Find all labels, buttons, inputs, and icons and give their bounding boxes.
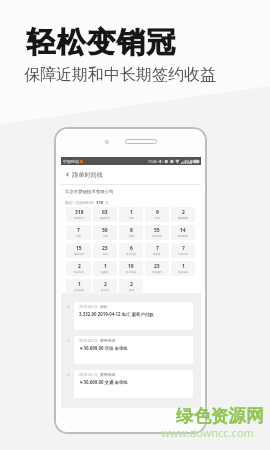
staticText: 50 xyxy=(102,227,108,234)
staticText: 回款 xyxy=(100,304,108,309)
staticText: 退换货 xyxy=(101,271,109,274)
staticText: 商机跟进 xyxy=(178,235,188,238)
staticText: 318 xyxy=(96,200,104,206)
staticText: 2019-04-12 xyxy=(79,372,98,377)
button[interactable]: 2019-04-12 xyxy=(74,370,193,398)
staticText: 7 xyxy=(77,227,80,234)
staticText: 拜访记录 xyxy=(152,235,162,238)
button[interactable]: Back xyxy=(61,165,201,184)
button[interactable]: 19 xyxy=(119,261,143,276)
staticText: 2 xyxy=(104,281,107,288)
button[interactable]: 1 xyxy=(93,261,117,276)
staticText: 售后工单 xyxy=(74,271,84,274)
staticText: 新增客户 xyxy=(74,217,84,220)
button[interactable]: 318 xyxy=(66,207,91,222)
button[interactable]: 2 xyxy=(93,279,117,294)
staticText: 1 xyxy=(182,263,185,270)
other: Back xyxy=(65,172,70,177)
staticText: 20:10:32 xyxy=(185,159,199,164)
staticText: 绿色资源网 xyxy=(176,405,264,427)
button[interactable]: 2 xyxy=(66,261,91,276)
staticText: 报价单 xyxy=(153,253,161,256)
staticText: 7 xyxy=(182,245,185,252)
button[interactable]: 1 xyxy=(119,207,143,222)
staticText: 合同 xyxy=(129,217,134,220)
staticText: 其他 xyxy=(129,289,134,292)
staticText: 回款 xyxy=(155,217,160,220)
staticText: 19 xyxy=(128,263,134,270)
button[interactable]: 1 xyxy=(66,279,91,294)
staticText: 1 xyxy=(130,209,133,216)
staticText: 跟进记录 xyxy=(100,217,110,220)
staticText: 电话记录 xyxy=(74,253,84,256)
staticText: 出差 xyxy=(76,235,81,238)
button[interactable]: 6 xyxy=(119,243,143,258)
staticText: 63 xyxy=(102,209,108,216)
staticText: 轻松变销冠 xyxy=(26,25,176,61)
staticText: 积分兑换 xyxy=(178,271,188,274)
button[interactable]: 9 xyxy=(145,207,169,222)
button[interactable]: 8 xyxy=(119,225,143,240)
button[interactable]: 15 xyxy=(66,243,91,258)
staticText: 跟单时间线 xyxy=(72,171,103,179)
staticText: 天 xyxy=(105,201,109,206)
button[interactable]: 14 xyxy=(171,225,195,240)
staticText: 2 xyxy=(78,263,81,270)
staticText: 保障近期和中长期签约收益 xyxy=(24,65,216,85)
staticText: 9 xyxy=(156,209,159,216)
button[interactable]: 23 xyxy=(145,261,169,276)
staticText: ￥30,699.00 活动 未审批 xyxy=(79,345,128,351)
staticText: 转介绍 xyxy=(101,289,109,292)
button[interactable]: 2 xyxy=(119,279,143,294)
staticText: 费用明细 xyxy=(100,372,116,377)
staticText: www.downcc.com xyxy=(161,425,254,440)
staticText: 2019-04-12 xyxy=(79,338,98,343)
staticText: 14 xyxy=(180,227,186,234)
button[interactable]: 2019-04-12 xyxy=(74,302,193,330)
staticText: 23 xyxy=(154,263,160,270)
staticText: 费用明细 xyxy=(178,217,188,220)
button[interactable]: 63 xyxy=(93,207,117,222)
staticText: 2019-04-12 xyxy=(79,304,98,309)
staticText: 23 xyxy=(102,245,108,252)
staticText: 55 xyxy=(154,227,160,234)
staticText: 客户关怀 xyxy=(126,253,136,256)
button[interactable]: 23 xyxy=(93,243,117,258)
staticText: 订单记录 xyxy=(178,253,188,256)
staticText: 北京市梦锡技术有限公司 xyxy=(65,189,114,195)
staticText: 15 xyxy=(76,245,82,252)
button[interactable]: 7 xyxy=(171,243,195,258)
staticText: 2 xyxy=(130,281,133,288)
button[interactable]: 1 xyxy=(171,261,195,276)
staticText: 会员升级 xyxy=(74,289,84,292)
button[interactable]: 2 xyxy=(171,207,195,222)
staticText: 最近一次跟进时间 xyxy=(65,201,94,206)
staticText: 周报 xyxy=(129,235,134,238)
staticText: 日报 xyxy=(103,235,108,238)
staticText: 1 xyxy=(78,281,81,288)
staticText: ￥30,669.00 交通 未审批 xyxy=(79,379,128,385)
staticText: 11:06 xyxy=(148,159,157,164)
staticText: 3,332.00 2019-04-12 电汇 新客户付款 xyxy=(79,311,154,317)
button[interactable]: 50 xyxy=(93,225,117,240)
staticText: 2 xyxy=(182,209,185,216)
button[interactable]: 2019-04-12 xyxy=(74,336,193,364)
staticText: 1 xyxy=(104,263,107,270)
button[interactable]: 7 xyxy=(66,225,91,240)
staticText: 客户投诉 xyxy=(126,271,136,274)
staticText: 6 xyxy=(130,245,133,252)
staticText: 8 xyxy=(130,227,133,234)
staticText: 活动邀约 xyxy=(152,271,162,274)
staticText: 318 xyxy=(75,209,84,216)
staticText: 中国移动 xyxy=(63,159,79,164)
staticText: 7 xyxy=(156,245,159,252)
staticText: 邮件 xyxy=(103,253,108,256)
button[interactable]: 55 xyxy=(145,225,169,240)
button[interactable]: 7 xyxy=(145,243,169,258)
staticText: 费用明细 xyxy=(100,338,116,343)
